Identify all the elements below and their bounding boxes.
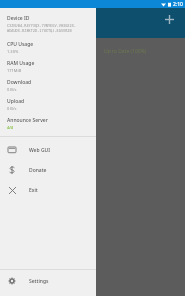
button[interactable]: Device ID bbox=[0, 12, 96, 36]
staticText: Announce Server bbox=[7, 117, 48, 124]
staticText: Device ID bbox=[7, 15, 30, 22]
staticText: 2:10 bbox=[173, 1, 183, 8]
staticText: Exit bbox=[29, 187, 38, 194]
button[interactable]: Upload bbox=[0, 95, 96, 114]
staticText: 171MiB bbox=[7, 68, 22, 73]
button[interactable]: Settings bbox=[0, 270, 96, 290]
staticText: DEVICES bbox=[4, 27, 31, 35]
button[interactable]: DEVICES bbox=[4, 27, 31, 35]
button[interactable]: Announce Server bbox=[0, 114, 96, 133]
staticText: Upload bbox=[7, 98, 25, 105]
staticText: Donate bbox=[29, 167, 47, 174]
button[interactable]: Web GUI bbox=[0, 140, 96, 160]
staticText: 1.30% bbox=[7, 49, 19, 54]
staticText: 4/4 bbox=[7, 125, 14, 130]
button[interactable]: Exit bbox=[0, 180, 96, 200]
staticText: CXZNJB4-R4YY3QX-7VNYEGV-VH3GX2X- WDAUDX-… bbox=[7, 23, 76, 33]
staticText: Web GUI bbox=[29, 147, 50, 154]
button[interactable]: RAM Usage bbox=[0, 57, 96, 76]
button[interactable]: Download bbox=[0, 76, 96, 95]
staticText: RAM Usage bbox=[7, 60, 35, 67]
staticText: Up to Date (100%) bbox=[104, 48, 147, 55]
staticText: CPU Usage bbox=[7, 41, 34, 48]
staticText: Download bbox=[7, 79, 32, 86]
staticText: Settings bbox=[29, 278, 49, 285]
button[interactable]: Donate bbox=[0, 160, 96, 180]
button[interactable]: CPU Usage bbox=[0, 38, 96, 57]
staticText: 0 B/s bbox=[7, 106, 17, 111]
staticText: 0 B/s bbox=[7, 87, 17, 92]
button[interactable]: Add device bbox=[161, 11, 177, 27]
